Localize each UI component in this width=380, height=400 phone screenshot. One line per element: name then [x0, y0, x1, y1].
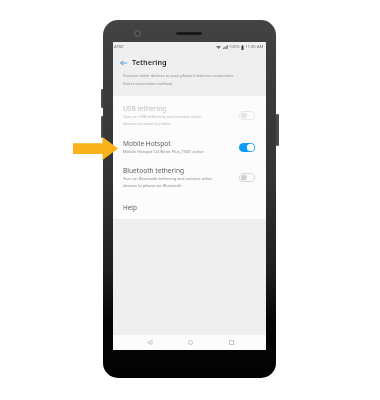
- staticText: 11:00 AM: [245, 44, 264, 50]
- staticText: Mobile Hotspot 'LG Neon Plus_7545' activ…: [123, 149, 204, 155]
- button[interactable]: Bluetooth tethering: [113, 164, 266, 190]
- staticText: Select connection method.: [123, 81, 173, 86]
- staticText: AT&T: [114, 44, 124, 50]
- staticText: Tethering: [132, 57, 167, 67]
- staticText: Bluetooth tethering: [123, 166, 185, 175]
- button[interactable]: Back: [134, 335, 164, 350]
- button[interactable]: Recent apps: [216, 335, 246, 350]
- staticText: USB tethering: [123, 104, 167, 113]
- staticText: Connect other devices to your phone's in…: [123, 73, 234, 78]
- staticText: Mobile Hotspot: [123, 139, 171, 148]
- button[interactable]: Back: [118, 57, 129, 68]
- staticText: Help: [123, 203, 137, 212]
- staticText: Turn on Bluetooth tethering and connect …: [123, 176, 213, 188]
- staticText: Turn on USB tethering and connect other …: [123, 114, 202, 126]
- button[interactable]: Home: [175, 335, 205, 350]
- button[interactable]: Mobile Hotspot: [113, 134, 266, 160]
- button[interactable]: USB tethering: [113, 102, 266, 128]
- staticText: 100%: [229, 44, 240, 50]
- button[interactable]: Help: [113, 199, 266, 216]
